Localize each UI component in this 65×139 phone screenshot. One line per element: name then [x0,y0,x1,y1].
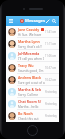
staticText: Martha & Seb [18,87,42,92]
staticText: JoHMiramda [18,51,40,56]
button[interactable]: Martha Lynn [6,38,59,49]
button[interactable]: Tracy Wu [6,62,59,73]
button[interactable]: Search [51,18,57,24]
staticText: Sure get a out of a client mate… [18,81,45,85]
staticText: 11:41 am [45,30,57,34]
staticText: 10:22 am [45,78,57,82]
staticText: Bo Nooh [18,111,33,116]
staticText: Messages [25,18,46,24]
staticText: 11:11 am [45,42,57,46]
button[interactable]: JoHMiramda [6,50,59,61]
staticText: Yesterday [45,90,57,94]
button[interactable]: Chat Room 5/TY/B [6,98,59,109]
staticText: 10:57 am [45,66,57,70]
button[interactable]: Martha & Seb [6,86,59,97]
staticText: Sorry, that's ok !! [18,45,43,49]
button[interactable]: Andrew Black [6,74,59,85]
staticText: Sounds good, I'm interested in… [18,69,45,73]
staticText: Chat Room 5/TY/B [18,99,45,104]
staticText: Martha - hello everyone [18,105,45,109]
staticText: I'll call you when I get the doc… [18,57,45,61]
staticText: Andrew Black [18,75,42,80]
staticText: Tracy Wu [18,63,34,68]
staticText: Martha Lynn [18,39,40,44]
button[interactable]: Bo Nooh [6,110,59,121]
button[interactable]: Home [27,125,38,136]
staticText: Jane Cassidy [18,27,40,32]
staticText: 11:06 am [45,54,57,58]
staticText: Sorry. Call me when you have… [18,93,45,97]
staticText: Hi Sue. We have an update to… [18,33,45,37]
button[interactable]: Menu [8,18,14,24]
staticText: Check this out when you can… [18,117,45,121]
staticText: Yesterday [45,102,57,106]
staticText: Yesterday [45,114,57,118]
button[interactable]: Compose [45,18,51,24]
button[interactable]: Jane Cassidy [6,26,59,37]
